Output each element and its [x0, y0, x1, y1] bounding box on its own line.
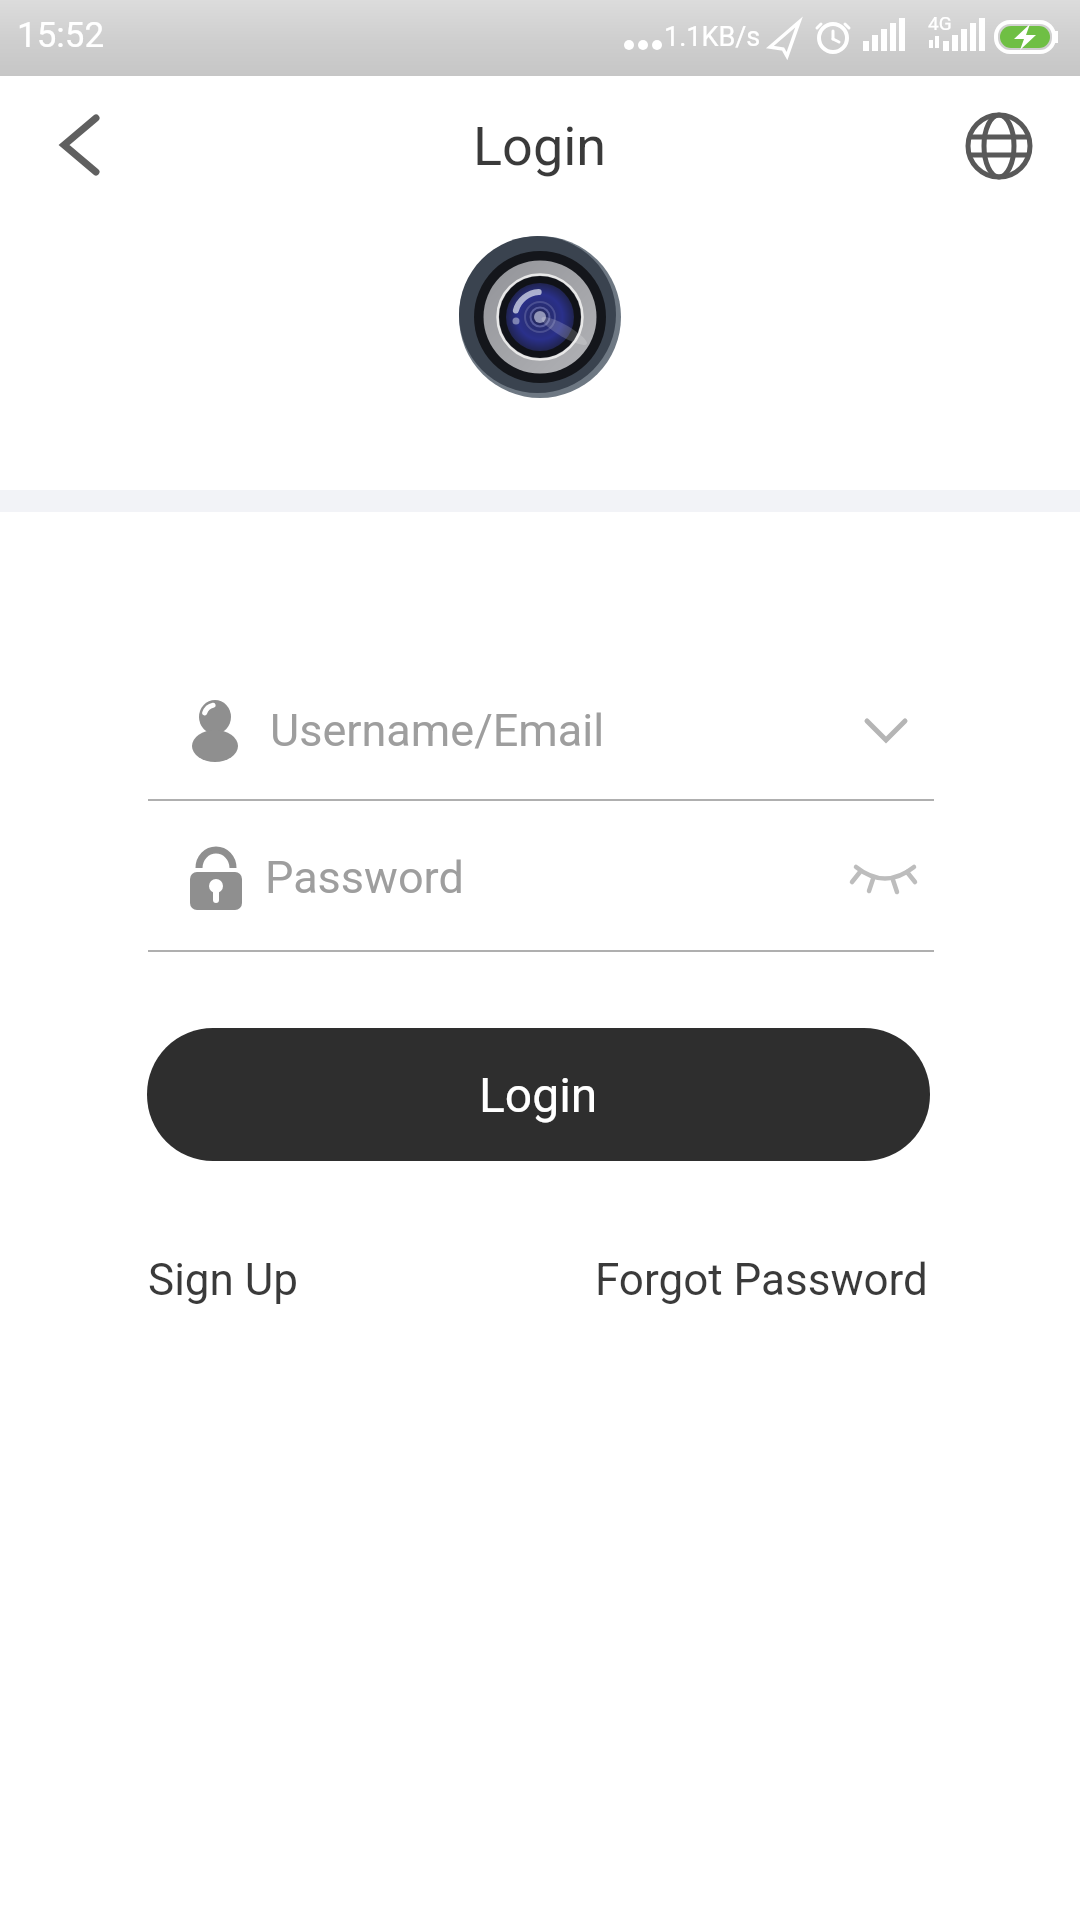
staticText: Password: [265, 851, 464, 904]
button[interactable]: Password: [148, 840, 934, 950]
button[interactable]: Sign Up: [148, 1254, 298, 1306]
staticText: Login: [473, 115, 607, 178]
button[interactable]: Login: [147, 1028, 930, 1161]
button[interactable]: Forgot Password: [595, 1254, 928, 1306]
button[interactable]: [949, 96, 1049, 196]
staticText: 4G: [928, 12, 952, 34]
staticText: 15:52: [17, 15, 105, 56]
staticText: Sign Up: [148, 1254, 298, 1306]
staticText: Username/Email: [270, 704, 605, 757]
button[interactable]: [30, 96, 130, 196]
staticText: 1.1KB/s: [664, 21, 761, 53]
staticText: Login: [479, 1067, 598, 1123]
button[interactable]: Username/Email: [148, 690, 934, 800]
staticText: Forgot Password: [595, 1254, 928, 1306]
